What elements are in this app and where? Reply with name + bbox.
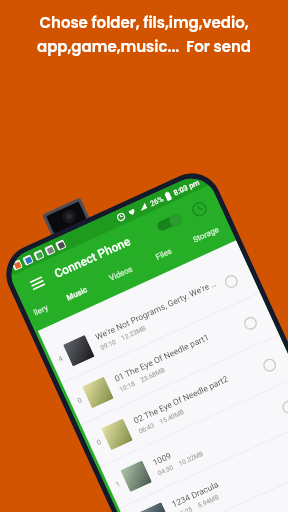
staticText: Storage	[191, 225, 221, 245]
staticText: 01 The Eye Of Needle part1	[113, 332, 211, 384]
staticText: 10.32MB	[177, 449, 205, 468]
button[interactable]: Music	[50, 275, 106, 320]
button[interactable]: 1	[100, 377, 288, 509]
button[interactable]: Select 02 The Eye Of Needle part2	[258, 354, 281, 376]
staticText: 06:43	[137, 421, 156, 436]
button[interactable]: 2	[138, 460, 288, 512]
button[interactable]: Toggle connection	[155, 210, 184, 234]
staticText: 1009	[151, 450, 173, 467]
staticText: 15.40MB	[158, 408, 186, 426]
staticText: 26%	[148, 194, 165, 208]
button[interactable]: 0	[62, 293, 279, 425]
button[interactable]: 0	[81, 335, 288, 467]
staticText: 0	[76, 396, 83, 405]
staticText: 1	[114, 480, 121, 489]
button[interactable]: Transfer history	[189, 199, 209, 219]
button[interactable]: Files	[139, 236, 191, 279]
button[interactable]: 4	[43, 251, 260, 384]
staticText: 8:03 pm	[172, 178, 201, 197]
staticText: 02 The Eye Of Needle part2	[132, 374, 230, 426]
staticText: 12.23MB	[120, 324, 148, 342]
staticText: 0	[95, 438, 102, 447]
staticText: 4	[57, 354, 64, 363]
staticText: 1234 Dracula	[170, 479, 220, 509]
button[interactable]: Open navigation menu	[26, 272, 47, 294]
button[interactable]: Videos	[95, 255, 151, 300]
staticText: 04:30	[156, 463, 175, 477]
button[interactable]: llery	[24, 295, 61, 332]
button[interactable]: Select We're Not Programs, Gerty. We're …	[220, 270, 243, 293]
staticText: Videos	[108, 264, 134, 283]
staticText: We're Not Programs, Gerty. We're P...	[94, 278, 218, 342]
staticText: llery	[32, 303, 50, 317]
button[interactable]: Storage	[179, 216, 236, 261]
staticText: Chose folder, fils,img,vedio,	[39, 12, 249, 33]
staticText: Music	[65, 285, 89, 302]
staticText: 5.94MB	[197, 493, 221, 510]
staticText: 23.68MB	[139, 366, 167, 384]
button[interactable]: Select 1009	[277, 396, 288, 418]
button[interactable]: Select 01 The Eye Of Needle part1	[239, 312, 262, 335]
staticText: Files	[154, 246, 173, 262]
button[interactable]: 1	[119, 418, 288, 512]
staticText: 05:25	[176, 505, 194, 512]
staticText: 10:18	[118, 379, 137, 394]
staticText: app,game,music... For send	[37, 36, 251, 57]
staticText: 09:10	[99, 338, 118, 352]
staticText: Connect Phone	[52, 234, 133, 281]
button[interactable]: 2	[158, 502, 288, 512]
